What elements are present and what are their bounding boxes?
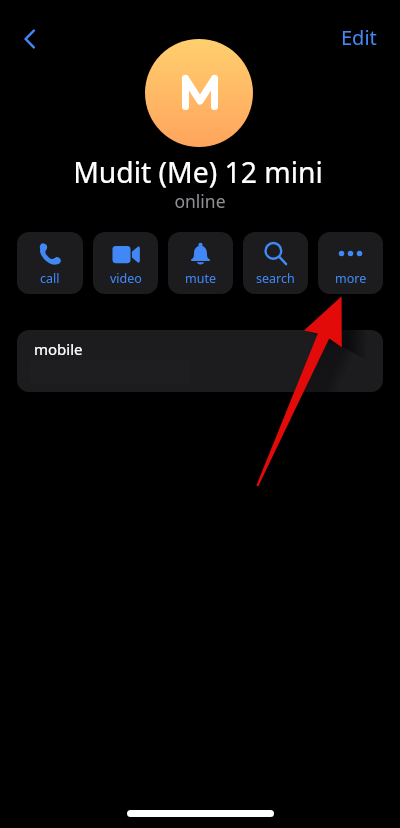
button[interactable]: search	[243, 232, 308, 294]
staticText: call	[40, 270, 60, 287]
button[interactable]: Contact photo	[145, 39, 253, 147]
staticText: video	[110, 270, 142, 287]
button[interactable]: mute	[168, 232, 233, 294]
staticText: online	[0, 189, 400, 213]
button[interactable]: more	[318, 232, 383, 294]
button[interactable]: Edit	[333, 16, 385, 59]
button[interactable]: mobile	[17, 330, 383, 392]
staticText: mute	[185, 270, 216, 287]
staticText: Edit	[341, 24, 377, 51]
button[interactable]: call	[17, 232, 83, 294]
staticText: more	[335, 270, 367, 287]
button[interactable]: video	[93, 232, 158, 294]
staticText: Mudit (Me) 12 mini	[0, 153, 398, 192]
button[interactable]: Back	[8, 17, 52, 61]
staticText: search	[256, 270, 295, 287]
staticText: mobile	[34, 339, 83, 359]
